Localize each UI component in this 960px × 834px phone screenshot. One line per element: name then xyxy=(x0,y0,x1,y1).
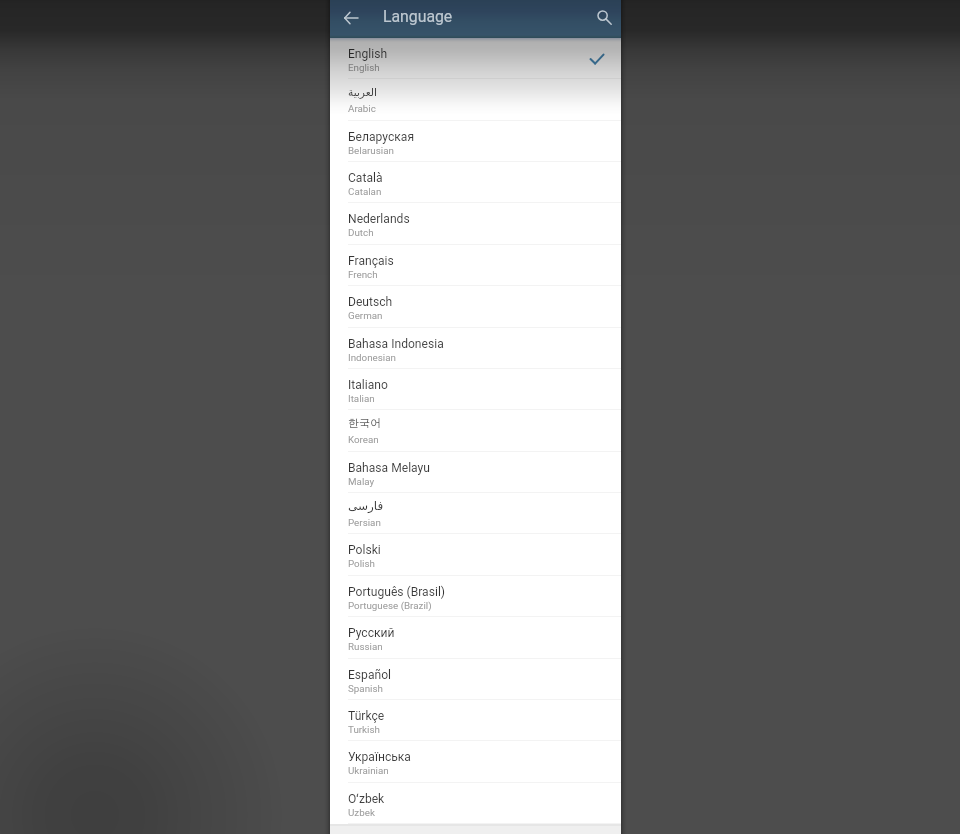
staticText: Indonesian xyxy=(348,352,396,363)
staticText: Malay xyxy=(348,476,375,487)
button[interactable]: Search xyxy=(588,1,620,33)
button[interactable]: Català xyxy=(330,162,621,203)
button[interactable]: Беларуская xyxy=(330,121,621,162)
staticText: Catalan xyxy=(348,186,382,197)
button[interactable]: English xyxy=(330,38,621,79)
staticText: Arabic xyxy=(348,103,376,114)
button[interactable]: Español xyxy=(330,659,621,700)
staticText: فارسی xyxy=(348,499,384,513)
button[interactable]: Bahasa Melayu xyxy=(330,452,621,493)
staticText: Turkish xyxy=(348,724,380,735)
staticText: Ukrainian xyxy=(348,765,389,776)
button[interactable]: Русский xyxy=(330,617,621,659)
staticText: Italian xyxy=(348,393,375,404)
staticText: 한국어 xyxy=(348,416,382,430)
staticText: English xyxy=(348,62,380,73)
staticText: Polski xyxy=(348,543,381,557)
button[interactable]: Deutsch xyxy=(330,286,621,328)
staticText: Dutch xyxy=(348,227,374,238)
button[interactable]: العربية xyxy=(330,79,621,121)
button[interactable]: Bahasa Indonesia xyxy=(330,328,621,369)
staticText: Belarusian xyxy=(348,145,394,156)
staticText: Spanish xyxy=(348,683,383,694)
staticText: Russian xyxy=(348,641,383,652)
staticText: Português (Brasil) xyxy=(348,585,446,599)
staticText: Language xyxy=(383,7,453,26)
staticText: Español xyxy=(348,668,392,682)
staticText: Oʻzbek xyxy=(348,792,385,806)
button[interactable]: 한국어 xyxy=(330,410,621,452)
button[interactable]: Français xyxy=(330,245,621,286)
staticText: العربية xyxy=(348,86,377,98)
staticText: Persian xyxy=(348,517,381,528)
staticText: Беларуская xyxy=(348,130,415,144)
staticText: Uzbek xyxy=(348,807,375,818)
staticText: Nederlands xyxy=(348,212,410,226)
staticText: Italiano xyxy=(348,378,388,392)
button[interactable]: Türkçe xyxy=(330,700,621,741)
staticText: Türkçe xyxy=(348,709,385,723)
staticText: Polish xyxy=(348,558,375,569)
staticText: Bahasa Indonesia xyxy=(348,337,444,351)
staticText: Deutsch xyxy=(348,295,393,309)
button[interactable]: Italiano xyxy=(330,369,621,410)
staticText: French xyxy=(348,269,378,280)
staticText: Français xyxy=(348,254,394,268)
staticText: Українська xyxy=(348,750,411,764)
staticText: Bahasa Melayu xyxy=(348,461,430,475)
button[interactable]: Українська xyxy=(330,741,621,783)
staticText: Русский xyxy=(348,626,395,640)
button[interactable]: فارسی xyxy=(330,493,621,534)
staticText: English xyxy=(348,47,388,61)
button[interactable]: Oʻzbek xyxy=(330,783,621,824)
button[interactable]: Back xyxy=(337,4,365,32)
staticText: Korean xyxy=(348,434,379,445)
staticText: German xyxy=(348,310,383,321)
button[interactable]: Polski xyxy=(330,534,621,576)
button[interactable]: Português (Brasil) xyxy=(330,576,621,617)
staticText: Portuguese (Brazil) xyxy=(348,600,432,611)
staticText: Català xyxy=(348,171,383,185)
button[interactable]: Nederlands xyxy=(330,203,621,245)
